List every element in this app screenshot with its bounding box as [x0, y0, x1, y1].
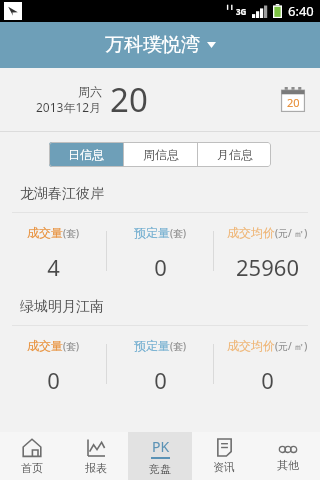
button[interactable]: 绿城明月江南 — [0, 289, 320, 325]
button[interactable]: 成交均价 — [214, 326, 320, 402]
staticText: 2013年12月 — [36, 99, 102, 115]
staticText: 日信息 — [68, 147, 104, 162]
staticText: 龙湖春江彼岸 — [20, 185, 104, 203]
button[interactable]: 成交量 — [0, 213, 106, 289]
staticText: 竞盘 — [149, 462, 171, 476]
staticText: 成交量 — [27, 338, 63, 353]
staticText: (套) — [63, 226, 79, 240]
button[interactable]: 周信息 — [124, 142, 197, 167]
staticText: (元/ ㎡) — [275, 226, 308, 240]
staticText: 0 — [47, 365, 60, 395]
staticText: (套) — [63, 339, 79, 353]
staticText: 3G — [236, 6, 247, 17]
button[interactable]: 龙湖春江彼岸 — [0, 176, 320, 212]
staticText: 预定量 — [134, 225, 170, 240]
button[interactable]: 万科璞悦湾 — [0, 22, 320, 68]
staticText: 绿城明月江南 — [20, 298, 104, 316]
staticText: 月信息 — [217, 147, 253, 162]
staticText: 周信息 — [143, 147, 179, 162]
staticText: 20 — [287, 95, 300, 110]
staticText: 周六 — [78, 84, 102, 99]
button[interactable]: 成交均价 — [214, 213, 320, 289]
button[interactable]: 成交量 — [0, 326, 106, 402]
staticText: 25960 — [236, 252, 299, 282]
button[interactable]: 其他 — [256, 432, 320, 480]
staticText: 0 — [154, 252, 167, 282]
staticText: 首页 — [21, 461, 43, 475]
staticText: (套) — [170, 226, 186, 240]
staticText: 0 — [261, 365, 274, 395]
button[interactable]: 资讯 — [192, 432, 256, 480]
staticText: 其他 — [277, 458, 299, 472]
button[interactable]: 首页 — [0, 432, 64, 480]
button[interactable]: 月信息 — [198, 142, 271, 167]
staticText: 6:40 — [288, 2, 314, 20]
staticText: (套) — [170, 339, 186, 353]
button[interactable]: 预定量 — [107, 213, 213, 289]
button[interactable]: 日信息 — [49, 142, 123, 167]
staticText: 资讯 — [213, 460, 235, 474]
staticText: 预定量 — [134, 338, 170, 353]
staticText: 成交均价 — [227, 225, 275, 240]
button[interactable]: PK — [128, 432, 192, 480]
staticText: 成交量 — [27, 225, 63, 240]
staticText: 万科璞悦湾 — [105, 33, 200, 57]
button[interactable]: 报表 — [64, 432, 128, 480]
button[interactable]: 预定量 — [107, 326, 213, 402]
staticText: PK — [152, 437, 170, 456]
staticText: 0 — [154, 365, 167, 395]
staticText: (元/ ㎡) — [275, 339, 308, 353]
button[interactable]: Pick date — [280, 87, 306, 113]
staticText: 4 — [47, 252, 60, 282]
staticText: 成交均价 — [227, 338, 275, 353]
staticText: 报表 — [85, 461, 107, 475]
staticText: 20 — [110, 77, 148, 122]
